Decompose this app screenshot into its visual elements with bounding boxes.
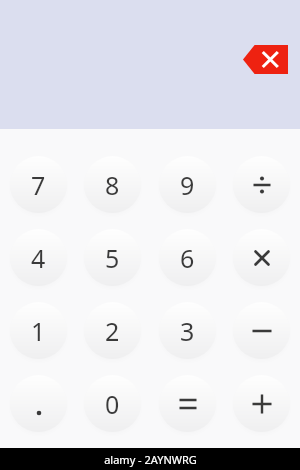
button[interactable]: Add xyxy=(233,375,290,432)
button[interactable]: 7 xyxy=(10,156,67,213)
staticText: 1 xyxy=(31,314,46,348)
staticText: 9 xyxy=(180,168,195,202)
staticText: 5 xyxy=(105,241,120,275)
button[interactable]: 1 xyxy=(10,302,67,359)
button[interactable]: Multiply xyxy=(233,229,290,286)
button[interactable]: 5 xyxy=(84,229,141,286)
button[interactable]: Clear xyxy=(243,45,288,74)
button[interactable]: Equals xyxy=(159,375,216,432)
button[interactable]: Decimal point xyxy=(10,375,67,432)
staticText: 3 xyxy=(180,314,195,348)
button[interactable]: 8 xyxy=(84,156,141,213)
staticText: 2 xyxy=(105,314,120,348)
button[interactable]: 3 xyxy=(159,302,216,359)
button[interactable]: Subtract xyxy=(233,302,290,359)
button[interactable]: 9 xyxy=(159,156,216,213)
staticText: 0 xyxy=(105,387,120,421)
button[interactable]: 4 xyxy=(10,229,67,286)
button[interactable]: 2 xyxy=(84,302,141,359)
button[interactable]: Divide xyxy=(233,156,290,213)
button[interactable]: 0 xyxy=(84,375,141,432)
staticText: 7 xyxy=(31,168,46,202)
staticText: 8 xyxy=(105,168,120,202)
staticText: 4 xyxy=(31,241,46,275)
staticText: 6 xyxy=(180,241,195,275)
staticText: alamy - 2AYNWRG xyxy=(104,452,197,467)
button[interactable]: 6 xyxy=(159,229,216,286)
